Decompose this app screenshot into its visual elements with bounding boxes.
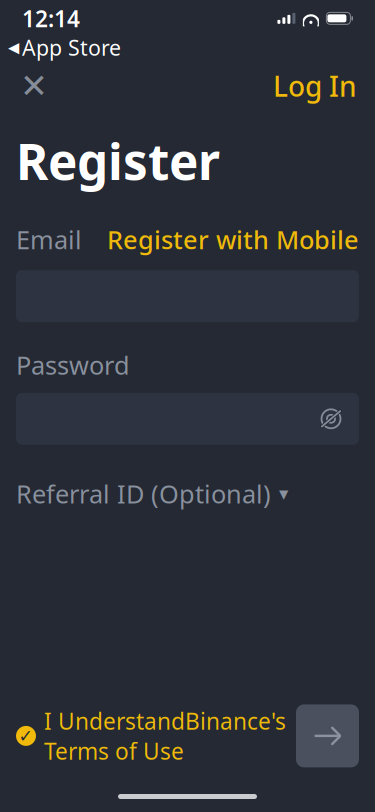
button[interactable]: Continue [296, 704, 359, 767]
staticText: ▾ [279, 483, 288, 504]
staticText: I UnderstandBinance's Terms of Use [44, 706, 286, 766]
button[interactable]: Log In [269, 61, 361, 111]
staticText: Register with Mobile [107, 222, 359, 256]
button[interactable]: Show password [311, 399, 351, 439]
button[interactable]: ✓ [16, 700, 286, 772]
staticText: Register [16, 128, 220, 193]
staticText: ✕ [20, 67, 48, 105]
button[interactable]: Close [14, 66, 54, 106]
staticText: ◀ [8, 39, 19, 56]
button[interactable]: Register with Mobile [107, 219, 359, 259]
button[interactable]: Referral ID (Optional) [16, 471, 288, 516]
staticText: Referral ID (Optional) [16, 477, 271, 510]
staticText: ✓ [18, 726, 33, 746]
staticText: App Store [22, 33, 121, 62]
button[interactable]: ◀ [2, 31, 127, 64]
staticText: Log In [273, 67, 357, 105]
staticText: 12:14 [22, 3, 80, 33]
staticText: Password [16, 348, 130, 382]
staticText: Email [16, 222, 82, 256]
